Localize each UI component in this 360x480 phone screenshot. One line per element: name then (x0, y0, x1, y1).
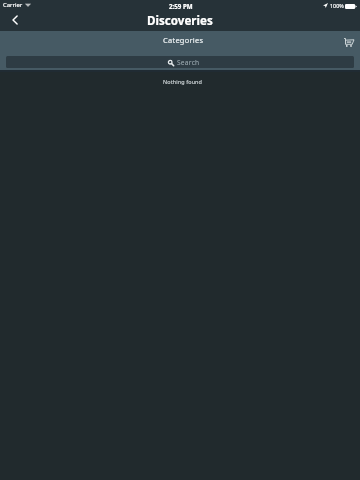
staticText: 100% (330, 2, 344, 9)
button[interactable]: Back (6, 12, 24, 28)
staticText: 2:59 PM (169, 2, 193, 10)
staticText: Categories (163, 35, 204, 45)
button[interactable]: Categories (120, 31, 240, 53)
staticText: Discoveries (147, 13, 213, 29)
staticText: Nothing found (163, 78, 203, 85)
staticText: Carrier (3, 1, 23, 9)
staticText: Search (177, 58, 200, 67)
button[interactable]: Cart (343, 36, 355, 48)
button[interactable]: Search (6, 56, 354, 68)
